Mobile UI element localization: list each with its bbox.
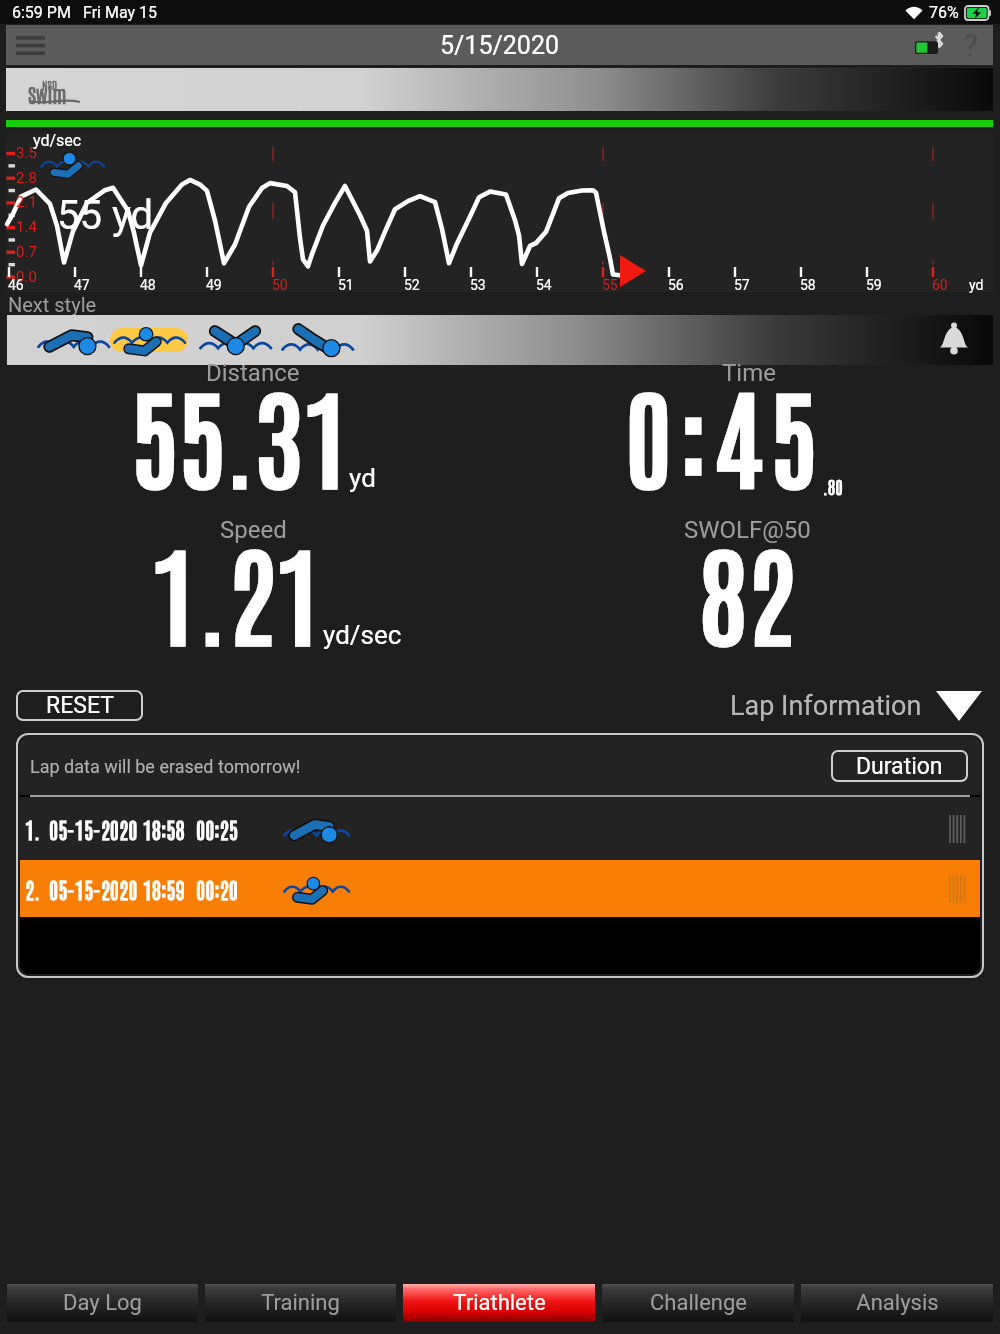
staticText: 57 — [734, 277, 750, 293]
staticText: Lap data will be erased tomorrow! — [30, 756, 301, 777]
staticText: 48 — [140, 277, 156, 293]
staticText: 0.0 — [16, 268, 37, 286]
staticText: 05-15-2020 18:58 — [49, 815, 185, 843]
staticText: 82 — [699, 520, 795, 660]
staticText: 60 — [932, 277, 948, 293]
staticText: Fri May 15 — [83, 3, 157, 22]
staticText: RESET — [46, 692, 114, 719]
staticText: Challenge — [650, 1290, 747, 1316]
staticText: 05-15-2020 18:59 — [49, 875, 185, 903]
staticText: 51 — [338, 277, 354, 293]
button[interactable]: RESET — [16, 690, 143, 721]
button[interactable]: Day Log — [7, 1284, 198, 1322]
staticText: Day Log — [63, 1290, 142, 1316]
staticText: 55 — [602, 277, 618, 293]
staticText: 6:59 PM — [12, 3, 71, 22]
button[interactable]: Challenge — [602, 1284, 794, 1322]
button[interactable]: Analysis — [801, 1284, 993, 1322]
button[interactable]: Menu — [6, 25, 54, 65]
staticText: yd — [349, 463, 376, 493]
staticText: 2. — [25, 875, 40, 903]
button[interactable]: Training — [205, 1284, 396, 1322]
staticText: SWOLF@50 — [684, 516, 811, 544]
staticText: 0.7 — [16, 243, 37, 261]
staticText: 1.4 — [16, 218, 37, 236]
staticText: Analysis — [856, 1290, 939, 1316]
staticText: NSD — [42, 77, 58, 91]
staticText: Training — [261, 1290, 340, 1316]
staticText: 3.5 — [16, 144, 37, 162]
staticText: 00:20 — [196, 875, 238, 903]
button[interactable]: Alarm — [931, 317, 977, 363]
staticText: 1. — [25, 815, 40, 843]
staticText: 58 — [800, 277, 816, 293]
staticText: 52 — [404, 277, 420, 293]
staticText: 56 — [668, 277, 684, 293]
button[interactable]: Duration — [831, 750, 968, 782]
staticText: 0:45 — [625, 363, 824, 503]
staticText: Time — [722, 359, 776, 387]
staticText: 55.31 — [130, 363, 351, 503]
staticText: Speed — [220, 516, 287, 544]
staticText: 00:25 — [196, 815, 238, 843]
staticText: 2.8 — [16, 169, 37, 187]
staticText: 53 — [470, 277, 486, 293]
staticText: Next style — [8, 293, 97, 316]
staticText: 49 — [206, 277, 222, 293]
staticText: 46 — [8, 277, 24, 293]
staticText: yd — [969, 277, 984, 293]
button[interactable]: Stroke style — [33, 317, 113, 363]
staticText: Swim — [28, 81, 67, 107]
staticText: yd/sec — [323, 620, 402, 650]
staticText: 76% — [929, 3, 959, 22]
button[interactable]: 1. — [20, 797, 980, 860]
staticText: .80 — [823, 474, 843, 497]
staticText: Distance — [206, 359, 300, 387]
staticText: Lap Information — [730, 690, 922, 722]
staticText: 2.1 — [16, 193, 37, 211]
button[interactable]: Stroke style — [195, 317, 275, 363]
staticText: Triathlete — [453, 1290, 546, 1316]
button[interactable]: Stroke style — [277, 317, 357, 363]
staticText: Duration — [856, 753, 943, 780]
staticText: 1.21 — [150, 520, 323, 660]
button[interactable]: Stroke style — [109, 317, 189, 363]
staticText: 50 — [272, 277, 288, 293]
button[interactable]: Triathlete — [403, 1284, 595, 1322]
staticText: yd/sec — [33, 131, 82, 150]
staticText: 47 — [74, 277, 90, 293]
button[interactable]: 2. — [20, 860, 980, 917]
staticText: 5/15/2020 — [440, 31, 559, 60]
staticText: 55 yd — [57, 192, 154, 239]
staticText: ? — [963, 26, 979, 64]
staticText: 59 — [866, 277, 882, 293]
staticText: 54 — [536, 277, 552, 293]
